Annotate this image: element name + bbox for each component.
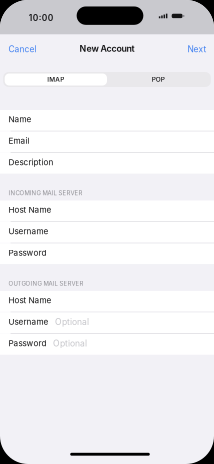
button[interactable]: Cancel	[0, 40, 45, 58]
staticText: POP	[152, 76, 165, 83]
button[interactable]: Password	[0, 243, 214, 264]
staticText: Name	[8, 114, 31, 124]
button[interactable]: IMAP	[5, 73, 107, 85]
staticText: Password	[8, 248, 46, 258]
staticText: Description	[8, 157, 53, 167]
staticText: Cancel	[8, 44, 36, 54]
staticText: New Account	[79, 43, 134, 54]
staticText: Next	[187, 44, 206, 54]
staticText: Password	[8, 338, 46, 348]
button[interactable]: Next	[180, 40, 214, 58]
button[interactable]: Password	[0, 334, 214, 355]
staticText: Email	[8, 136, 29, 146]
staticText: OUTGOING MAIL SERVER	[8, 280, 83, 287]
staticText: Username	[8, 226, 48, 236]
staticText: Optional	[55, 317, 89, 327]
staticText: Host Name	[8, 205, 51, 215]
button[interactable]: Email	[0, 131, 214, 152]
button[interactable]: Host Name	[0, 200, 214, 221]
button[interactable]: POP	[107, 73, 209, 85]
staticText: Username	[8, 317, 48, 327]
button[interactable]: Name	[0, 110, 214, 131]
button[interactable]: Host Name	[0, 291, 214, 312]
staticText: IMAP	[47, 76, 64, 83]
staticText: Host Name	[8, 295, 51, 305]
button[interactable]: Description	[0, 153, 214, 174]
staticText: INCOMING MAIL SERVER	[8, 189, 82, 197]
staticText: Optional	[53, 338, 87, 348]
button[interactable]: Username	[0, 222, 214, 243]
button[interactable]: Username	[0, 312, 214, 333]
staticText: 10:00	[29, 13, 54, 23]
